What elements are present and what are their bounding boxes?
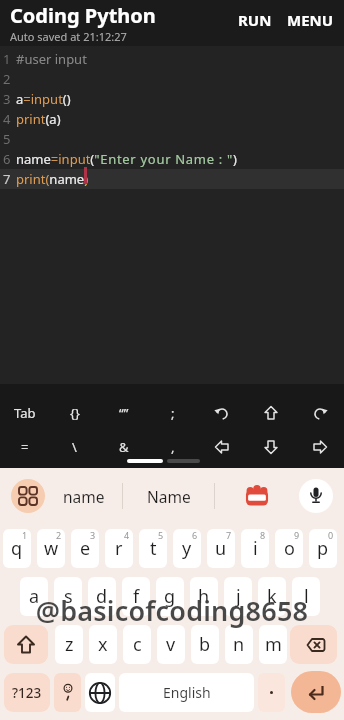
button[interactable]: MENU	[287, 10, 334, 30]
staticText: 2	[56, 529, 62, 541]
staticText: p	[317, 536, 329, 561]
button[interactable]: o	[275, 529, 303, 568]
staticText: a=input()	[16, 90, 71, 108]
staticText: j	[236, 584, 241, 609]
button[interactable]: b	[191, 625, 219, 664]
staticText: &	[119, 438, 129, 456]
staticText: 4	[124, 529, 130, 541]
button[interactable]: v	[157, 625, 185, 664]
button[interactable]	[246, 432, 295, 462]
staticText: 3	[3, 90, 11, 108]
button[interactable]: h	[190, 577, 218, 616]
button[interactable]: i	[241, 529, 269, 568]
button[interactable]: “”	[99, 398, 148, 428]
button[interactable]: ;	[148, 398, 197, 428]
button[interactable]: q	[3, 529, 31, 568]
button[interactable]	[295, 398, 344, 428]
staticText: h	[198, 584, 210, 609]
staticText: 3	[90, 529, 96, 541]
button[interactable]: x	[89, 625, 117, 664]
button[interactable]: p	[309, 529, 337, 568]
staticText: 7	[3, 170, 11, 188]
button[interactable]: k	[258, 577, 286, 616]
button[interactable]: ?123	[4, 673, 50, 712]
button[interactable]: n	[225, 625, 253, 664]
button[interactable]: &	[99, 432, 148, 462]
staticText: 4	[3, 110, 11, 128]
staticText: {}	[70, 404, 80, 422]
staticText: x	[98, 632, 108, 657]
button[interactable]	[290, 625, 337, 664]
staticText: Tab	[14, 404, 36, 422]
staticText: 6	[3, 150, 11, 168]
button[interactable]	[85, 673, 115, 712]
staticText: l	[304, 584, 309, 609]
button[interactable]: Name	[123, 468, 214, 524]
button[interactable]: m	[259, 625, 287, 664]
staticText: c	[133, 632, 142, 657]
button[interactable]: d	[88, 577, 116, 616]
staticText: r	[115, 536, 123, 561]
button[interactable]	[215, 468, 299, 524]
button[interactable]	[299, 479, 333, 513]
staticText: m	[265, 632, 282, 657]
button[interactable]: w	[37, 529, 65, 568]
button[interactable]	[197, 398, 246, 428]
staticText: print(a)	[16, 110, 61, 128]
staticText: RUN	[238, 10, 272, 30]
button[interactable]: y	[173, 529, 201, 568]
staticText: t	[150, 536, 157, 561]
staticText: 1	[3, 50, 11, 68]
button[interactable]: t	[139, 529, 167, 568]
staticText: ?123	[12, 684, 42, 702]
staticText: name=input("Enter your Name : ")	[16, 150, 237, 168]
button[interactable]	[197, 432, 246, 462]
staticText: 5	[158, 529, 164, 541]
button[interactable]: z	[55, 625, 83, 664]
button[interactable]: \	[50, 432, 99, 462]
button[interactable]	[4, 625, 48, 664]
button[interactable]	[258, 673, 285, 712]
button[interactable]: ,	[148, 432, 197, 462]
staticText: e	[80, 536, 91, 561]
staticText: print(name)	[16, 170, 89, 188]
button[interactable]	[11, 479, 45, 513]
button[interactable]: RUN	[238, 10, 272, 30]
staticText: u	[215, 536, 227, 561]
button[interactable]: c	[123, 625, 151, 664]
staticText: 5	[3, 130, 11, 148]
button[interactable]: g	[156, 577, 184, 616]
staticText: #user input	[16, 50, 87, 68]
button[interactable]	[295, 432, 344, 462]
button[interactable]: {}	[50, 398, 99, 428]
button[interactable]	[291, 671, 341, 713]
staticText: ;	[171, 404, 175, 422]
staticText: Auto saved at 21:12:27	[10, 29, 127, 44]
staticText: “”	[119, 404, 129, 422]
button[interactable]: f	[122, 577, 150, 616]
button[interactable]: e	[71, 529, 99, 568]
button[interactable]	[246, 398, 295, 428]
button[interactable]: r	[105, 529, 133, 568]
staticText: 0	[328, 529, 334, 541]
button[interactable]: Tab	[0, 398, 50, 428]
staticText: b	[199, 632, 211, 657]
button[interactable]: u	[207, 529, 235, 568]
staticText: n	[233, 632, 245, 657]
button[interactable]	[54, 673, 81, 712]
staticText: f	[133, 584, 140, 609]
staticText: Name	[147, 486, 191, 507]
button[interactable]: English	[119, 673, 254, 712]
button[interactable]: name	[45, 468, 122, 524]
staticText: k	[267, 584, 277, 609]
staticText: @basicofcoding8658	[0, 592, 344, 629]
button[interactable]: j	[224, 577, 252, 616]
button[interactable]: s	[54, 577, 82, 616]
button[interactable]: l	[292, 577, 320, 616]
button[interactable]: =	[0, 432, 50, 462]
button[interactable]: a	[20, 577, 48, 616]
staticText: a	[29, 584, 40, 609]
staticText: y	[182, 536, 192, 561]
staticText: name	[63, 486, 105, 507]
staticText: \	[72, 438, 77, 456]
